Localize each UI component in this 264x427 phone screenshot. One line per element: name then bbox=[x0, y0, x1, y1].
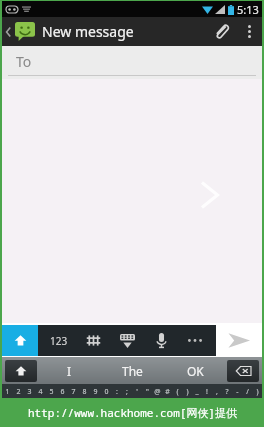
button[interactable]: Backspace bbox=[227, 360, 259, 382]
staticText: ( bbox=[176, 387, 179, 397]
button[interactable]: 0 bbox=[101, 384, 112, 399]
button[interactable]: ) bbox=[252, 384, 262, 399]
staticText: E bbox=[57, 403, 64, 418]
staticText: K bbox=[196, 406, 202, 418]
button[interactable]: Attach bbox=[204, 17, 238, 46]
button[interactable]: U bbox=[158, 399, 184, 421]
button[interactable]: / bbox=[242, 384, 252, 399]
button[interactable]: More options bbox=[238, 17, 260, 46]
button[interactable]: To bbox=[2, 46, 262, 79]
staticText: 6 bbox=[60, 387, 65, 397]
staticText: " bbox=[146, 387, 149, 397]
button[interactable]: More bbox=[182, 325, 208, 356]
button[interactable]: ; bbox=[122, 384, 132, 399]
button[interactable]: Voice input bbox=[148, 325, 174, 356]
button[interactable]: 2 bbox=[13, 384, 24, 399]
staticText: M bbox=[173, 409, 181, 420]
staticText: # bbox=[165, 387, 170, 397]
staticText: G bbox=[116, 406, 123, 418]
button[interactable]: : bbox=[112, 384, 122, 399]
staticText: 7 bbox=[71, 387, 76, 397]
button[interactable]: 6 bbox=[57, 384, 68, 399]
staticText: T bbox=[109, 403, 116, 418]
staticText: J bbox=[170, 406, 173, 418]
button[interactable]: I bbox=[184, 399, 210, 421]
staticText: To bbox=[16, 52, 32, 71]
staticText: H bbox=[142, 406, 149, 418]
staticText: ) bbox=[186, 387, 189, 397]
button[interactable]: _ bbox=[192, 384, 202, 399]
button[interactable]: @ bbox=[152, 384, 162, 399]
staticText: ) bbox=[256, 387, 259, 397]
button[interactable]: 123 bbox=[46, 325, 72, 356]
staticText: B bbox=[123, 409, 129, 420]
staticText: ! bbox=[206, 387, 208, 397]
button[interactable]: ! bbox=[202, 384, 212, 399]
staticText: R bbox=[85, 403, 92, 418]
button[interactable]: ' bbox=[132, 384, 142, 399]
button[interactable]: R bbox=[80, 399, 106, 421]
button[interactable]: , bbox=[212, 384, 222, 399]
staticText: : bbox=[116, 387, 118, 397]
button[interactable]: OK bbox=[164, 357, 227, 384]
staticText: 5 bbox=[49, 387, 54, 397]
button[interactable]: 3 bbox=[24, 384, 35, 399]
staticText: 5:13 bbox=[237, 2, 259, 17]
button[interactable]: ( bbox=[172, 384, 182, 399]
staticText: ; bbox=[126, 387, 128, 397]
staticText: ' bbox=[136, 387, 138, 397]
staticText: 3 bbox=[27, 387, 32, 397]
staticText: 123 bbox=[50, 334, 68, 348]
staticText: / bbox=[246, 387, 249, 397]
staticText: @ bbox=[154, 387, 161, 397]
button[interactable]: Send bbox=[216, 323, 262, 357]
button[interactable]: The bbox=[101, 357, 164, 384]
staticText: N bbox=[149, 409, 156, 420]
button[interactable]: Settings bbox=[80, 325, 106, 356]
staticText: 9 bbox=[93, 387, 98, 397]
staticText: 0 bbox=[104, 387, 109, 397]
button[interactable]: 8 bbox=[79, 384, 90, 399]
button[interactable]: 7 bbox=[68, 384, 79, 399]
staticText: ? bbox=[225, 387, 229, 397]
button[interactable]: E bbox=[54, 399, 80, 421]
button[interactable]: " bbox=[142, 384, 152, 399]
staticText: Y bbox=[135, 403, 142, 418]
staticText: 2 bbox=[16, 387, 21, 397]
button[interactable]: P bbox=[236, 399, 262, 421]
button[interactable]: W bbox=[28, 399, 54, 421]
staticText: - bbox=[236, 387, 239, 397]
button[interactable]: 5 bbox=[46, 384, 57, 399]
staticText: W bbox=[31, 403, 42, 418]
staticText: V bbox=[97, 409, 102, 420]
staticText: New message bbox=[42, 22, 134, 41]
button[interactable]: - bbox=[232, 384, 242, 399]
staticText: L bbox=[225, 406, 230, 418]
staticText: 1 bbox=[5, 387, 10, 397]
button[interactable]: O bbox=[210, 399, 236, 421]
button[interactable]: 1 bbox=[2, 384, 13, 399]
button[interactable]: T bbox=[106, 399, 132, 421]
staticText: S bbox=[42, 406, 47, 418]
staticText: _ bbox=[195, 387, 199, 397]
staticText: D bbox=[64, 406, 71, 418]
staticText: , bbox=[216, 387, 218, 397]
button[interactable]: 9 bbox=[90, 384, 101, 399]
button[interactable]: Shift bbox=[5, 360, 37, 382]
staticText: OK bbox=[187, 363, 204, 379]
button[interactable]: ? bbox=[222, 384, 232, 399]
button[interactable]: I bbox=[37, 357, 101, 384]
button[interactable]: Hide keyboard bbox=[114, 325, 140, 356]
button[interactable]: 4 bbox=[35, 384, 46, 399]
button[interactable]: # bbox=[162, 384, 172, 399]
button[interactable]: ) bbox=[182, 384, 192, 399]
button[interactable] bbox=[2, 17, 37, 46]
button[interactable]: Shift bbox=[2, 325, 38, 356]
staticText: C bbox=[71, 409, 77, 420]
button[interactable]: Y bbox=[132, 399, 158, 421]
